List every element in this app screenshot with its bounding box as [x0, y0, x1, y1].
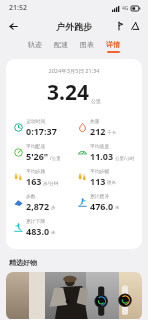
button[interactable]: Back: [5, 18, 21, 34]
staticText: 483.0: [26, 225, 50, 237]
staticText: 户外跑步: [56, 21, 92, 32]
staticText: 212: [90, 125, 106, 137]
staticText: 平均配速: [26, 143, 46, 149]
staticText: 配速: [54, 40, 68, 49]
staticText: 21:52: [9, 3, 27, 13]
staticText: 163: [26, 175, 42, 187]
staticText: 厘米: [107, 180, 116, 186]
button[interactable]: Share: [128, 19, 142, 33]
staticText: 476.0: [90, 200, 114, 212]
staticText: 3.24: [47, 78, 89, 107]
button[interactable]: HUAWEI WATCH GT 4: [6, 272, 142, 320]
staticText: 2024年3月5日 21:34: [6, 67, 142, 75]
staticText: 平均速度: [90, 143, 110, 149]
staticText: 11.03: [90, 150, 114, 162]
staticText: 轨迹: [28, 40, 42, 49]
staticText: 步数: [26, 193, 36, 199]
staticText: 4G: [122, 5, 129, 12]
staticText: 热量: [90, 118, 100, 124]
button[interactable]: 详情: [100, 38, 126, 55]
staticText: 步/分钟: [43, 180, 59, 186]
staticText: 步: [51, 205, 56, 211]
staticText: 5'26": [26, 150, 49, 162]
staticText: 千卡: [107, 130, 116, 136]
staticText: 米: [51, 230, 56, 236]
staticText: 平均步频: [26, 168, 46, 174]
staticText: 米: [115, 205, 120, 211]
staticText: 公里: [91, 98, 101, 104]
staticText: 精选好物: [9, 258, 37, 267]
button[interactable]: 配速: [48, 38, 74, 55]
button[interactable]: Location: [112, 19, 126, 33]
staticText: 0:17:37: [26, 125, 57, 137]
staticText: 累计爬升: [90, 193, 110, 199]
staticText: 累计下降: [26, 218, 46, 224]
button[interactable]: 轨迹: [22, 38, 48, 55]
staticText: 平均步幅: [90, 168, 110, 174]
staticText: 113: [90, 175, 106, 187]
staticText: 运动时间: [26, 118, 46, 124]
staticText: 详情: [106, 40, 120, 49]
staticText: /公里: [50, 155, 61, 161]
staticText: 图表: [80, 40, 94, 49]
staticText: 2,872: [26, 200, 50, 212]
staticText: 公里/小时: [115, 155, 135, 161]
button[interactable]: 图表: [74, 38, 100, 55]
